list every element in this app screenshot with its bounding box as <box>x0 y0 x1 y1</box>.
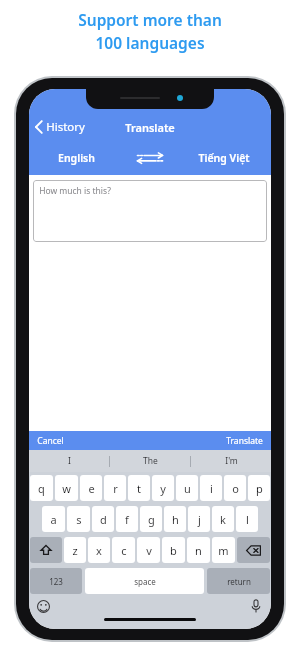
button[interactable]: f <box>116 506 138 532</box>
staticText: a <box>50 512 57 527</box>
staticText: t <box>137 481 141 496</box>
staticText: x <box>96 543 102 558</box>
staticText: w <box>62 481 71 496</box>
button[interactable]: space <box>85 568 204 594</box>
staticText: Translate <box>226 435 263 447</box>
staticText: b <box>170 543 177 558</box>
button[interactable]: r <box>104 475 126 501</box>
button[interactable]: return <box>207 568 270 594</box>
button[interactable]: x <box>88 537 110 563</box>
staticText: I'm <box>225 455 238 467</box>
button[interactable]: j <box>188 506 210 532</box>
staticText: d <box>100 512 107 527</box>
staticText: j <box>198 512 201 527</box>
staticText: e <box>88 481 95 496</box>
button[interactable]: History <box>29 116 91 138</box>
staticText: s <box>76 512 82 527</box>
button[interactable]: 123 <box>30 568 82 594</box>
staticText: z <box>72 543 78 558</box>
staticText: Tiếng Việt <box>198 151 250 165</box>
staticText: History <box>46 119 85 135</box>
staticText: p <box>256 481 263 496</box>
button[interactable]: n <box>187 537 210 563</box>
staticText: g <box>148 512 155 527</box>
button[interactable]: h <box>164 506 186 532</box>
button[interactable]: e <box>80 475 102 501</box>
staticText: 123 <box>49 576 63 587</box>
button[interactable]: i <box>200 475 222 501</box>
staticText: n <box>195 543 202 558</box>
staticText: English <box>58 151 95 165</box>
staticText: I <box>68 455 71 467</box>
staticText: h <box>172 512 179 527</box>
button[interactable]: k <box>212 506 234 532</box>
button[interactable]: g <box>140 506 162 532</box>
staticText: c <box>121 543 127 558</box>
button[interactable]: s <box>67 506 90 532</box>
staticText: u <box>184 481 191 496</box>
button[interactable]: I <box>29 450 109 472</box>
button[interactable]: How much is this? <box>33 180 267 242</box>
staticText: Translate <box>125 120 175 135</box>
button[interactable]: o <box>224 475 246 501</box>
button[interactable]: w <box>55 475 78 501</box>
button[interactable]: z <box>64 537 86 563</box>
button[interactable]: b <box>162 537 185 563</box>
button[interactable]: t <box>128 475 150 501</box>
staticText: m <box>218 543 229 558</box>
button[interactable]: Shift <box>30 537 62 563</box>
button[interactable]: p <box>248 475 270 501</box>
staticText: return <box>227 576 251 587</box>
staticText: The <box>143 455 158 467</box>
button[interactable]: q <box>30 475 53 501</box>
staticText: Cancel <box>37 435 64 447</box>
staticText: f <box>125 512 129 527</box>
button[interactable]: c <box>112 537 135 563</box>
button[interactable]: m <box>212 537 235 563</box>
button[interactable]: a <box>42 506 65 532</box>
button[interactable]: l <box>236 506 258 532</box>
staticText: How much is this? <box>39 185 111 197</box>
staticText: o <box>232 481 239 496</box>
button[interactable]: Emoji <box>34 597 52 615</box>
staticText: y <box>160 481 166 496</box>
staticText: space <box>134 576 156 587</box>
staticText: i <box>210 481 213 496</box>
staticText: l <box>246 512 249 527</box>
staticText: k <box>220 512 226 527</box>
button[interactable]: Cancel <box>29 431 72 450</box>
button[interactable]: I'm <box>191 450 271 472</box>
button[interactable]: Tiếng Việt <box>176 145 271 171</box>
button[interactable]: v <box>137 537 160 563</box>
staticText: Support more than <box>78 9 222 30</box>
staticText: 100 languages <box>95 32 205 53</box>
staticText: q <box>38 481 45 496</box>
button[interactable]: u <box>176 475 198 501</box>
button[interactable]: d <box>92 506 114 532</box>
button[interactable]: The <box>110 450 190 472</box>
button[interactable]: Dictation <box>247 597 265 615</box>
button[interactable]: English <box>29 145 124 171</box>
button[interactable]: Backspace <box>237 537 270 563</box>
button[interactable]: Swap languages <box>124 145 176 171</box>
staticText: v <box>146 543 152 558</box>
button[interactable]: Translate <box>218 431 271 450</box>
staticText: r <box>113 481 118 496</box>
button[interactable]: y <box>152 475 174 501</box>
